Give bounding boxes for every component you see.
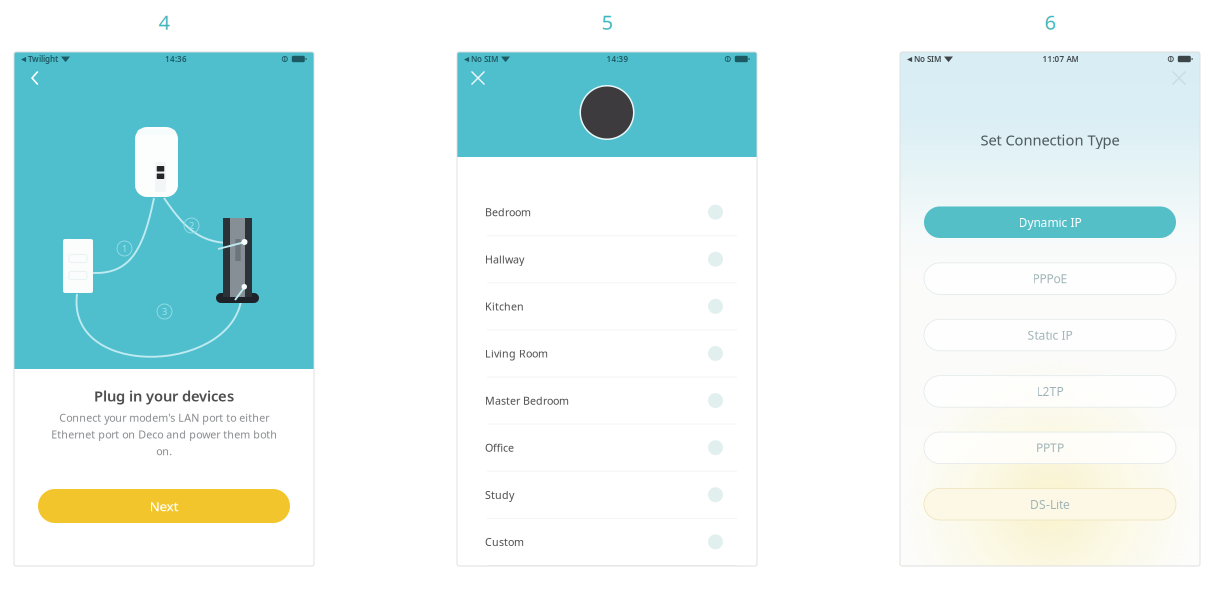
staticText: Hallway <box>485 252 524 266</box>
button[interactable]: Kitchen <box>457 283 757 330</box>
button[interactable]: Close <box>465 66 491 90</box>
staticText: 3 <box>162 305 167 318</box>
staticText: ◀ <box>464 55 469 63</box>
staticText: Set Connection Type <box>980 130 1119 149</box>
button[interactable]: DS-Lite <box>924 488 1176 520</box>
button[interactable]: Static IP <box>924 319 1176 351</box>
button[interactable]: Back <box>22 66 48 90</box>
staticText: Bedroom <box>485 205 531 219</box>
button[interactable]: Next <box>38 489 290 523</box>
staticText: PPPoE <box>1032 271 1067 287</box>
staticText: 2 <box>189 219 194 232</box>
button[interactable]: Close <box>1166 66 1192 90</box>
staticText: 6 <box>1044 9 1055 35</box>
staticText: Study <box>485 488 514 502</box>
staticText: Twilight <box>26 54 58 64</box>
staticText: 4 <box>158 9 169 35</box>
button[interactable]: Custom <box>457 519 757 566</box>
staticText: Living Room <box>485 346 548 361</box>
staticText: ◀ <box>907 55 912 63</box>
button[interactable]: Study <box>457 472 757 519</box>
staticText: Next <box>149 497 178 515</box>
staticText: No SIM <box>469 54 498 64</box>
staticText: Dynamic IP <box>1018 214 1081 230</box>
staticText: L2TP <box>1036 383 1063 399</box>
button[interactable]: PPTP <box>924 432 1176 464</box>
staticText: No SIM <box>912 54 941 64</box>
staticText: 5 <box>601 9 612 35</box>
button[interactable]: Hallway <box>457 236 757 283</box>
staticText: Connect your modem's LAN port to either … <box>51 410 277 458</box>
button[interactable]: L2TP <box>924 376 1176 407</box>
button[interactable]: Office <box>457 424 757 472</box>
button[interactable]: PPPoE <box>924 263 1176 294</box>
button[interactable]: Living Room <box>457 330 757 377</box>
staticText: 14:36 <box>165 54 187 64</box>
staticText: Plug in your devices <box>94 386 234 405</box>
staticText: DS-Lite <box>1030 496 1070 512</box>
staticText: Office <box>485 441 514 455</box>
staticText: 14:39 <box>606 54 628 64</box>
button[interactable]: Dynamic IP <box>924 206 1176 238</box>
staticText: 11:07 AM <box>1042 54 1078 64</box>
staticText: Custom <box>485 535 524 549</box>
staticText: 1 <box>122 242 127 255</box>
button[interactable]: Bedroom <box>457 189 757 236</box>
staticText: PPTP <box>1036 440 1064 456</box>
staticText: ◀ <box>21 55 26 63</box>
button[interactable]: Master Bedroom <box>457 377 757 424</box>
staticText: Master Bedroom <box>485 393 569 408</box>
staticText: Kitchen <box>485 299 524 313</box>
staticText: Static IP <box>1027 327 1072 343</box>
